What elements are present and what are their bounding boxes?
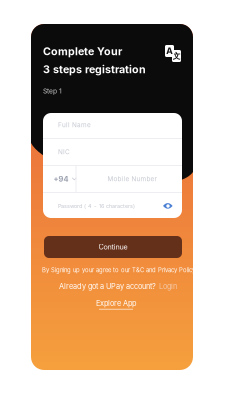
staticText: Continue (98, 243, 127, 251)
button[interactable]: +94 (43, 166, 182, 192)
staticText: A (166, 45, 173, 57)
staticText: Full Name (58, 121, 91, 129)
staticText: Explore App (96, 299, 136, 308)
staticText: By Signing up your agree to our T&C and … (42, 266, 197, 274)
button[interactable]: Change language (165, 45, 181, 62)
staticText: 3 steps registration (43, 63, 146, 76)
staticText: Mobile Number (107, 175, 156, 183)
staticText: 文 (172, 51, 180, 61)
button[interactable]: Full Name (43, 112, 182, 138)
staticText: Already got a UPay account? (59, 282, 156, 291)
staticText: Step 1 (43, 87, 62, 95)
staticText: +94 (53, 174, 68, 183)
button[interactable]: Password ( 4 - 16 characters) (43, 193, 182, 219)
staticText: NIC (58, 148, 70, 156)
staticText: Password ( 4 - 16 characters) (58, 203, 135, 209)
button[interactable]: Login (159, 282, 177, 291)
button[interactable]: Continue (44, 236, 182, 258)
staticText: Complete Your (43, 45, 122, 58)
staticText: Login (159, 282, 177, 291)
button[interactable]: Explore App (96, 299, 136, 309)
